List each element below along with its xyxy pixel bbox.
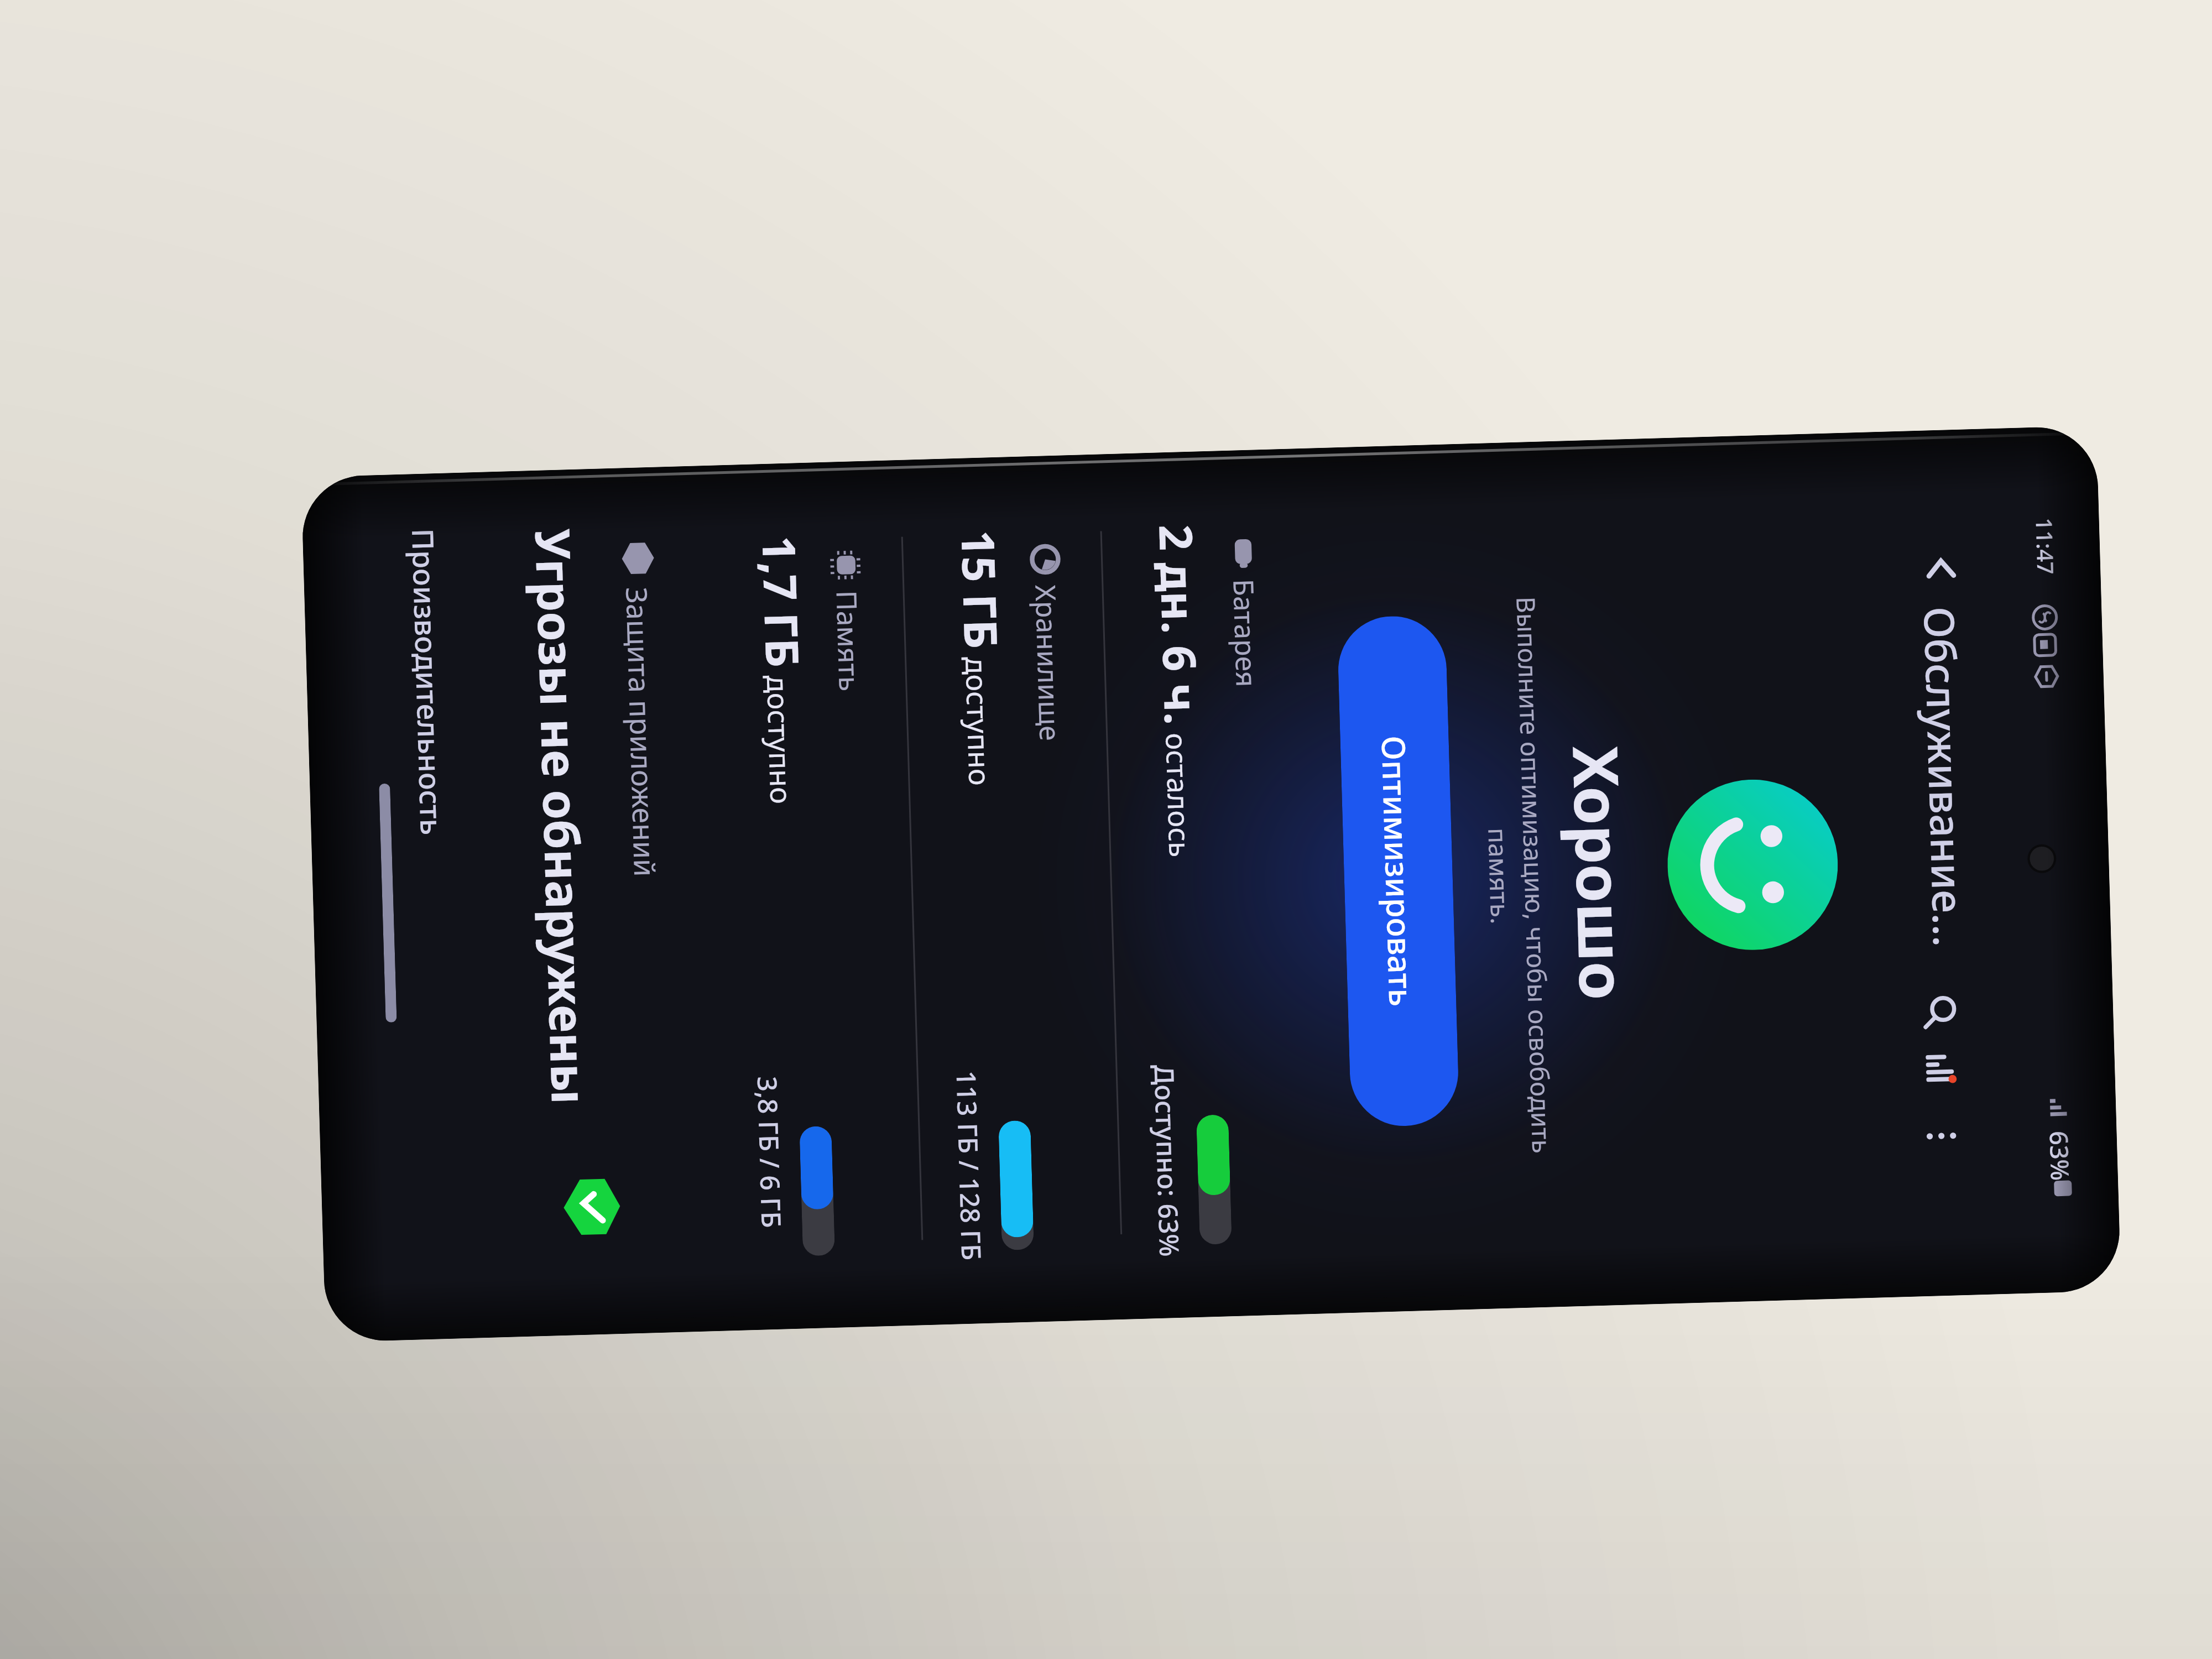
staticText: Обслуживание…	[1912, 606, 1978, 948]
staticText: 15 ГБ	[948, 529, 1013, 650]
staticText: 3,8 ГБ / 6 ГБ	[750, 1076, 790, 1229]
button[interactable]: Назад	[1909, 537, 1973, 601]
staticText: Батарея	[1225, 578, 1266, 688]
staticText: Оптимизировать	[1372, 735, 1424, 1007]
staticText: доступно	[758, 667, 802, 805]
staticText: Хорошо	[1546, 454, 1655, 1292]
button[interactable]: Поиск	[1908, 980, 1972, 1043]
staticText: Защита приложений	[618, 587, 665, 877]
button[interactable]: Оптимизировать	[1337, 615, 1460, 1128]
staticText: 1,7 ГБ	[749, 535, 815, 668]
staticText: Угрозы не обнаружены	[521, 528, 603, 1106]
staticText: осталось	[1157, 725, 1200, 858]
button[interactable]: Батарея	[1103, 520, 1290, 1254]
button[interactable]: Хранилище	[905, 525, 1092, 1260]
staticText: Выполните оптимизацию, чтобы освободить …	[1470, 457, 1564, 1294]
staticText: Хранилище	[1027, 584, 1069, 742]
staticText: Доступно: 63%	[1147, 1064, 1188, 1257]
staticText: Производительность	[404, 528, 452, 836]
staticText: 2 дн. 6 ч.	[1146, 524, 1214, 726]
button[interactable]: Статистика	[1910, 1037, 1974, 1101]
button[interactable]: Защита приложений	[496, 522, 684, 1262]
button[interactable]: Ещё	[1910, 1104, 1973, 1168]
staticText: Память	[828, 590, 869, 692]
button[interactable]: Память	[706, 531, 893, 1266]
staticText: 113 ГБ / 128 ГБ	[949, 1070, 990, 1261]
staticText: 63%	[2043, 1130, 2078, 1181]
staticText: доступно	[957, 649, 1000, 786]
staticText: 11:47	[2030, 517, 2061, 575]
